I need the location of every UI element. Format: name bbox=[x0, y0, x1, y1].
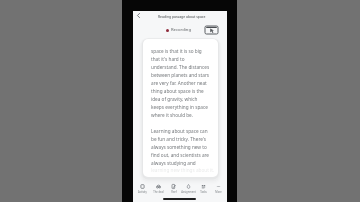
button[interactable]: Back bbox=[134, 11, 143, 20]
button[interactable]: space is that it is so big that it's har… bbox=[143, 39, 218, 177]
button[interactable]: Tasks bbox=[196, 184, 211, 194]
staticText: Activity bbox=[138, 190, 147, 194]
button[interactable]: Reef bbox=[166, 184, 181, 194]
staticText: Assignments bbox=[181, 190, 196, 194]
button[interactable]: Assignments bbox=[181, 184, 196, 194]
staticText: space is that it is so big that it's har… bbox=[151, 47, 210, 167]
staticText: The deal bbox=[153, 190, 164, 194]
staticText: Tasks bbox=[200, 190, 207, 194]
staticText: Reef bbox=[171, 190, 177, 194]
staticText: learning new things about it. bbox=[151, 167, 215, 173]
button[interactable]: The deal bbox=[150, 184, 166, 194]
button[interactable]: Recording bbox=[166, 27, 191, 33]
button[interactable]: Activity bbox=[134, 184, 150, 194]
staticText: More bbox=[215, 190, 222, 194]
staticText: Reading passage about space bbox=[158, 14, 206, 19]
button[interactable]: More bbox=[211, 184, 226, 194]
button[interactable]: Handwriting input bbox=[205, 26, 218, 34]
staticText: Recording bbox=[171, 27, 191, 33]
